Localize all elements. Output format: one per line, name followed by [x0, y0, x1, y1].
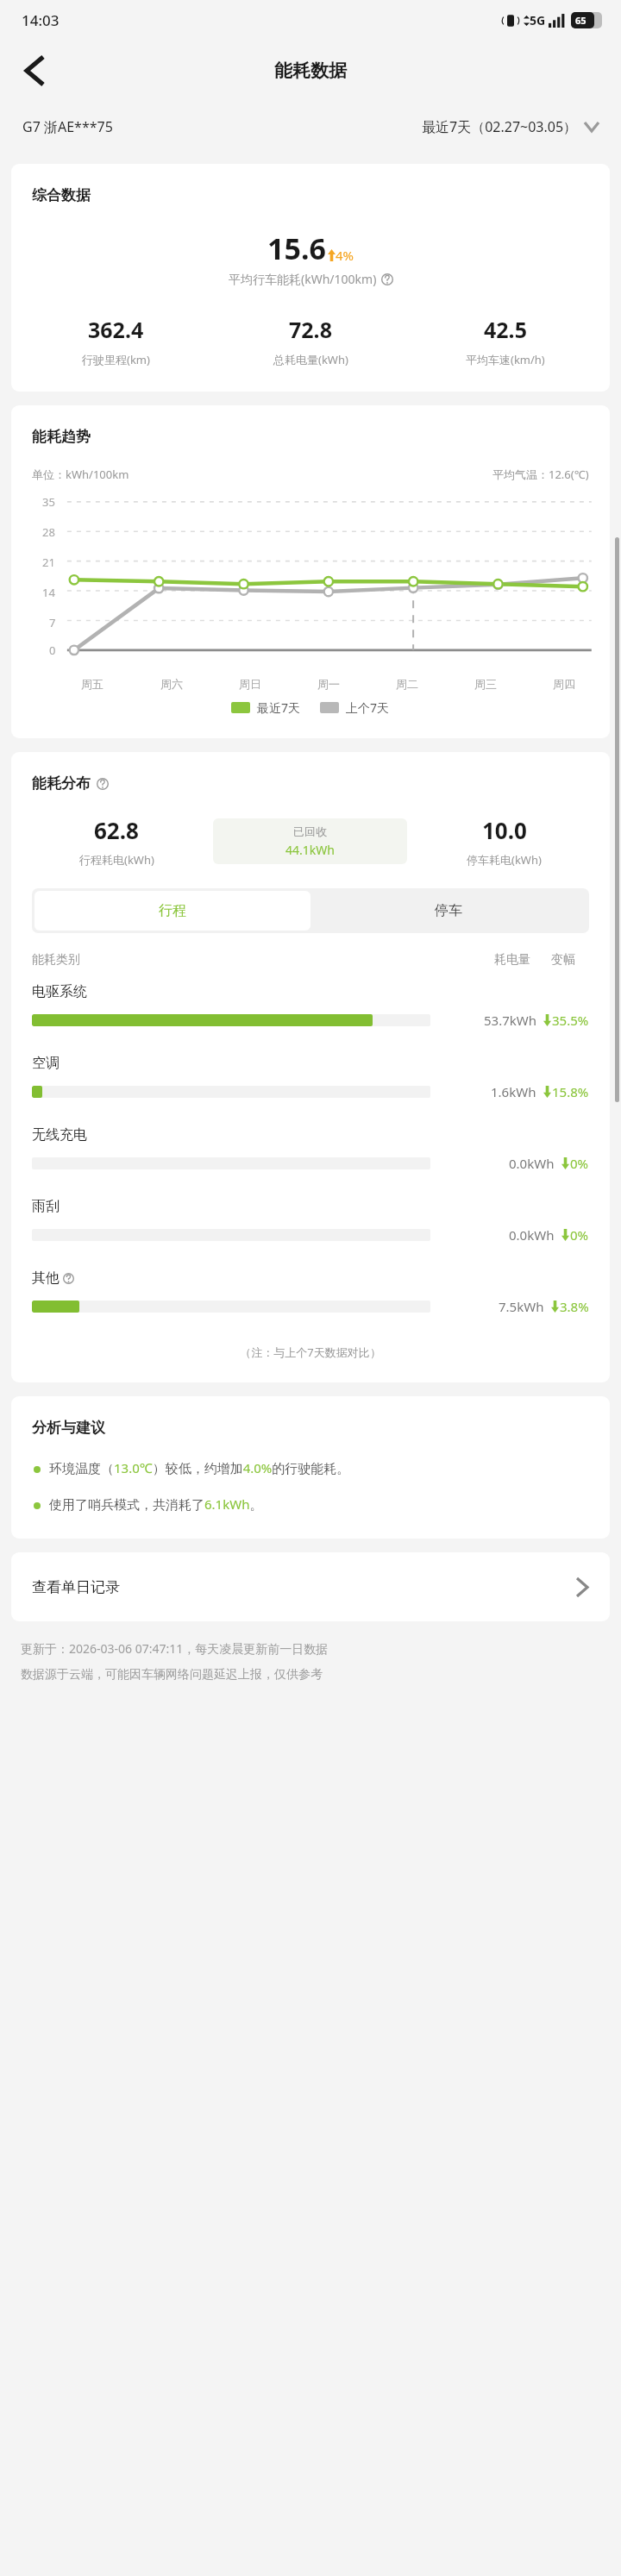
button[interactable]: 最近7天（02.27~03.05） [422, 117, 599, 136]
staticText: 53.7kWh [484, 1012, 536, 1029]
staticText: 使用了哨兵模式，共消耗了6.1kWh。 [49, 1495, 593, 1513]
staticText: 电驱系统 [32, 983, 87, 1000]
staticText: 0% [570, 1155, 589, 1172]
staticText: 15.8% [552, 1083, 589, 1100]
staticText: 周六 [160, 677, 183, 691]
staticText: 能耗数据 [274, 60, 347, 82]
staticText: 周一 [317, 677, 340, 691]
staticText: 行程 [159, 902, 186, 919]
staticText: 已回收 [293, 824, 327, 838]
staticText: 数据源于云端，可能因车辆网络问题延迟上报，仅供参考 [21, 1667, 323, 1683]
button[interactable]: 查看单日记录 [11, 1552, 610, 1621]
staticText: 35 [42, 494, 55, 510]
staticText: 周日 [239, 677, 261, 691]
staticText: 能耗类别 [32, 952, 80, 968]
staticText: 4% [336, 247, 354, 264]
staticText: 总耗电量(kWh) [273, 352, 348, 367]
staticText: 空调 [32, 1055, 60, 1072]
staticText: 行程耗电(kWh) [79, 852, 154, 868]
staticText: 平均行车能耗(kWh/100km) [229, 271, 377, 287]
staticText: 28 [42, 524, 55, 540]
staticText: 44.1kWh [285, 842, 335, 858]
staticText: 环境温度（13.0℃）较低，约增加4.0%的行驶能耗。 [49, 1459, 593, 1476]
staticText: 周四 [553, 677, 575, 691]
staticText: 42.5 [484, 315, 527, 344]
staticText: 7.5kWh [499, 1298, 544, 1315]
staticText: 1.6kWh [491, 1083, 536, 1100]
staticText: 变幅 [551, 952, 575, 968]
staticText: 15.6 [267, 229, 326, 268]
staticText: 停车耗电(kWh) [467, 852, 542, 868]
staticText: 14:03 [22, 10, 60, 30]
staticText: 上个7天 [346, 699, 390, 716]
staticText: 72.8 [289, 315, 332, 344]
staticText: 35.5% [552, 1012, 589, 1029]
staticText: 无线充电 [32, 1126, 87, 1144]
staticText: 行驶里程(km) [82, 352, 150, 367]
staticText: 3.8% [560, 1298, 589, 1315]
staticText: 其他 [32, 1269, 60, 1287]
staticText: 最近7天 [257, 699, 301, 716]
staticText: G7 浙AE***75 [22, 117, 113, 136]
staticText: 综合数据 [32, 186, 91, 204]
staticText: 0% [570, 1226, 589, 1244]
staticText: （注：与上个7天数据对比） [11, 1344, 610, 1360]
staticText: 分析与建议 [32, 1419, 105, 1437]
staticText: 5G [530, 12, 546, 28]
staticText: 查看单日记录 [32, 1578, 120, 1596]
staticText: 能耗趋势 [32, 428, 91, 446]
staticText: 单位：kWh/100km [32, 467, 129, 482]
staticText: 0 [49, 642, 56, 658]
staticText: 最近7天（02.27~03.05） [422, 117, 578, 136]
button[interactable]: 停车 [310, 891, 586, 931]
staticText: 耗电量 [494, 952, 530, 968]
staticText: 21 [42, 555, 55, 570]
staticText: 停车 [435, 902, 462, 919]
button[interactable]: 行程 [34, 891, 310, 931]
staticText: 雨刮 [32, 1198, 60, 1215]
staticText: 14 [42, 585, 55, 600]
staticText: 0.0kWh [509, 1226, 555, 1244]
staticText: 0.0kWh [509, 1155, 555, 1172]
staticText: 周五 [81, 677, 103, 691]
staticText: 周二 [396, 677, 418, 691]
staticText: 10.0 [482, 815, 527, 845]
staticText: 周三 [474, 677, 497, 691]
staticText: 能耗分布 [32, 774, 91, 793]
staticText: 62.8 [94, 815, 139, 845]
staticText: 更新于：2026-03-06 07:47:11，每天凌晨更新前一日数据 [21, 1640, 329, 1657]
staticText: 平均车速(km/h) [466, 352, 545, 367]
staticText: 7 [49, 615, 56, 630]
staticText: 平均气温：12.6(℃) [492, 467, 589, 482]
button[interactable]: Back [12, 48, 57, 93]
staticText: 362.4 [88, 315, 144, 344]
staticText: 65 [575, 14, 586, 27]
